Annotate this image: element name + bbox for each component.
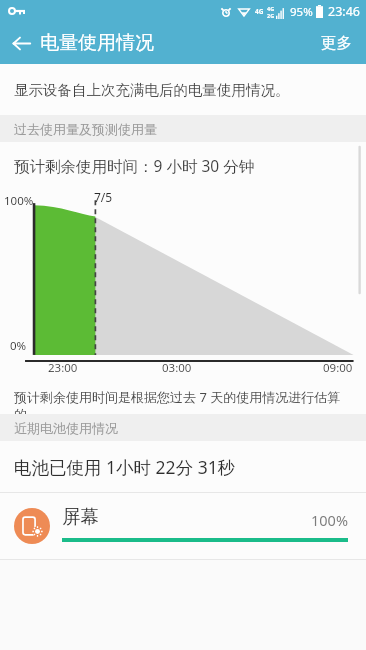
- button[interactable]: 更多: [307, 22, 366, 64]
- staticText: 电池已使用 1小时 22分 31秒: [14, 455, 236, 479]
- staticText: 预计剩余使用时间：9 小时 30 分钟: [14, 155, 255, 176]
- staticText: 显示设备自上次充满电后的电量使用情况。: [14, 81, 290, 99]
- staticText: 03:00: [162, 360, 192, 376]
- staticText: 100%: [4, 193, 34, 209]
- staticText: 预计剩余使用时间是根据您过去 7 天的使用情况进行估算的。: [14, 388, 358, 414]
- staticText: 更多: [321, 33, 352, 53]
- staticText: 电量使用情况: [40, 31, 154, 55]
- staticText: 95%: [290, 4, 313, 20]
- staticText: 2G: [267, 12, 275, 19]
- staticText: 23:00: [48, 360, 78, 376]
- button[interactable]: 屏幕: [0, 493, 366, 559]
- staticText: 近期电池使用情况: [14, 420, 118, 436]
- staticText: 屏幕: [62, 505, 99, 528]
- staticText: 23:46: [328, 3, 360, 20]
- staticText: 0%: [10, 338, 27, 354]
- staticText: 7/5: [94, 189, 113, 205]
- button[interactable]: Back: [0, 22, 42, 64]
- staticText: 过去使用量及预测使用量: [14, 121, 157, 137]
- staticText: 09:00: [323, 360, 353, 376]
- staticText: 100%: [311, 510, 348, 530]
- staticText: 4G: [267, 5, 275, 12]
- staticText: 4G: [255, 7, 264, 16]
